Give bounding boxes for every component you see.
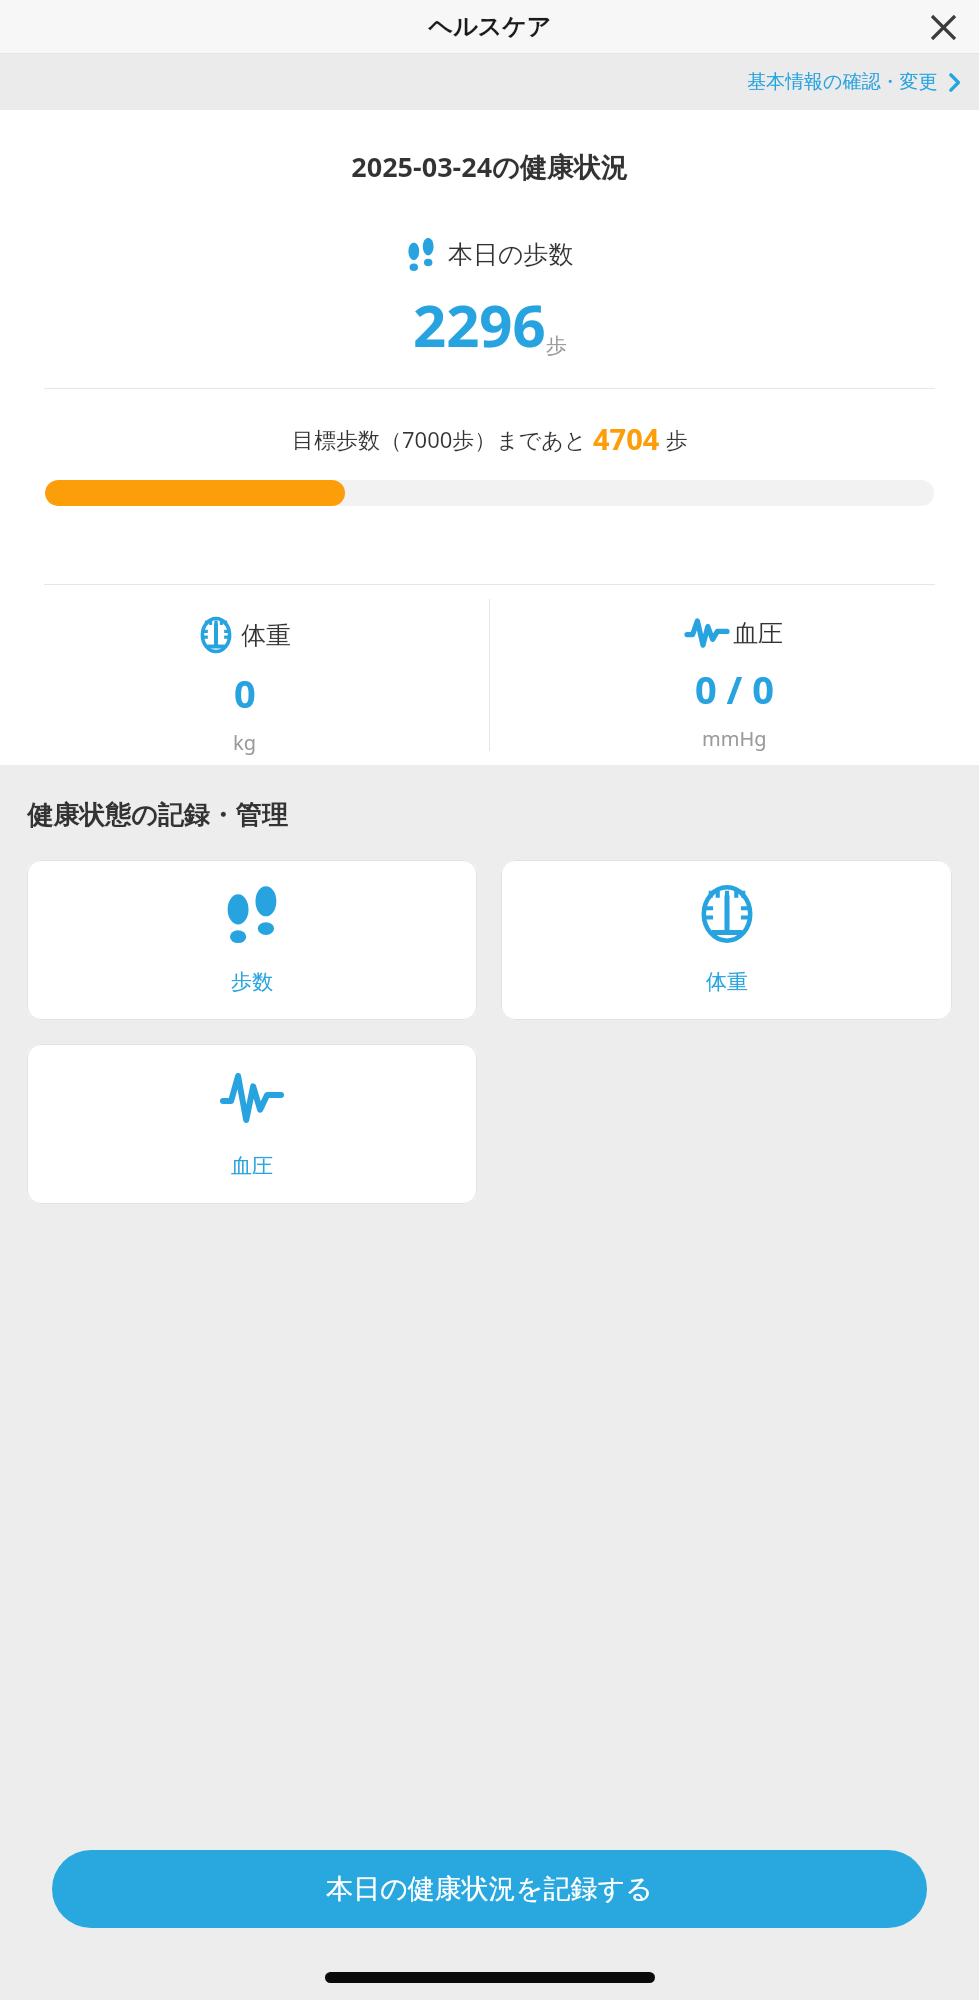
staticText: 歩 bbox=[546, 333, 567, 359]
button[interactable]: 本日の健康状況を記録する bbox=[52, 1850, 927, 1928]
staticText: 0 / 0 bbox=[695, 663, 775, 715]
button[interactable]: 基本情報の確認・変更 bbox=[729, 54, 979, 110]
staticText: 健康状態の記録・管理 bbox=[27, 799, 288, 832]
staticText: 歩 bbox=[660, 424, 688, 454]
staticText: 歩数 bbox=[231, 969, 273, 995]
staticText: 2296 bbox=[413, 285, 546, 364]
staticText: 0 bbox=[234, 667, 256, 719]
staticText: 血圧 bbox=[733, 618, 783, 649]
button[interactable]: 血圧 bbox=[27, 1044, 477, 1204]
button[interactable]: 体重 bbox=[501, 860, 952, 1020]
staticText: 基本情報の確認・変更 bbox=[747, 70, 938, 94]
staticText: ヘルスケア bbox=[428, 12, 551, 42]
staticText: 2025-03-24の健康状況 bbox=[0, 148, 979, 185]
staticText: kg bbox=[233, 729, 256, 756]
staticText: 体重 bbox=[706, 969, 748, 995]
button[interactable]: 歩数 bbox=[27, 860, 477, 1020]
button[interactable]: 体重 bbox=[0, 585, 489, 765]
staticText: 本日の健康状況を記録する bbox=[326, 1872, 653, 1906]
staticText: 本日の歩数 bbox=[448, 239, 574, 270]
staticText: mmHg bbox=[702, 725, 767, 752]
staticText: 4704 bbox=[593, 419, 660, 458]
button[interactable]: 閉じる bbox=[919, 3, 967, 51]
staticText: 目標歩数（7000歩）まであと bbox=[292, 424, 593, 454]
staticText: 体重 bbox=[241, 620, 291, 651]
staticText: 血圧 bbox=[231, 1153, 273, 1179]
button[interactable]: 血圧 bbox=[490, 585, 979, 765]
